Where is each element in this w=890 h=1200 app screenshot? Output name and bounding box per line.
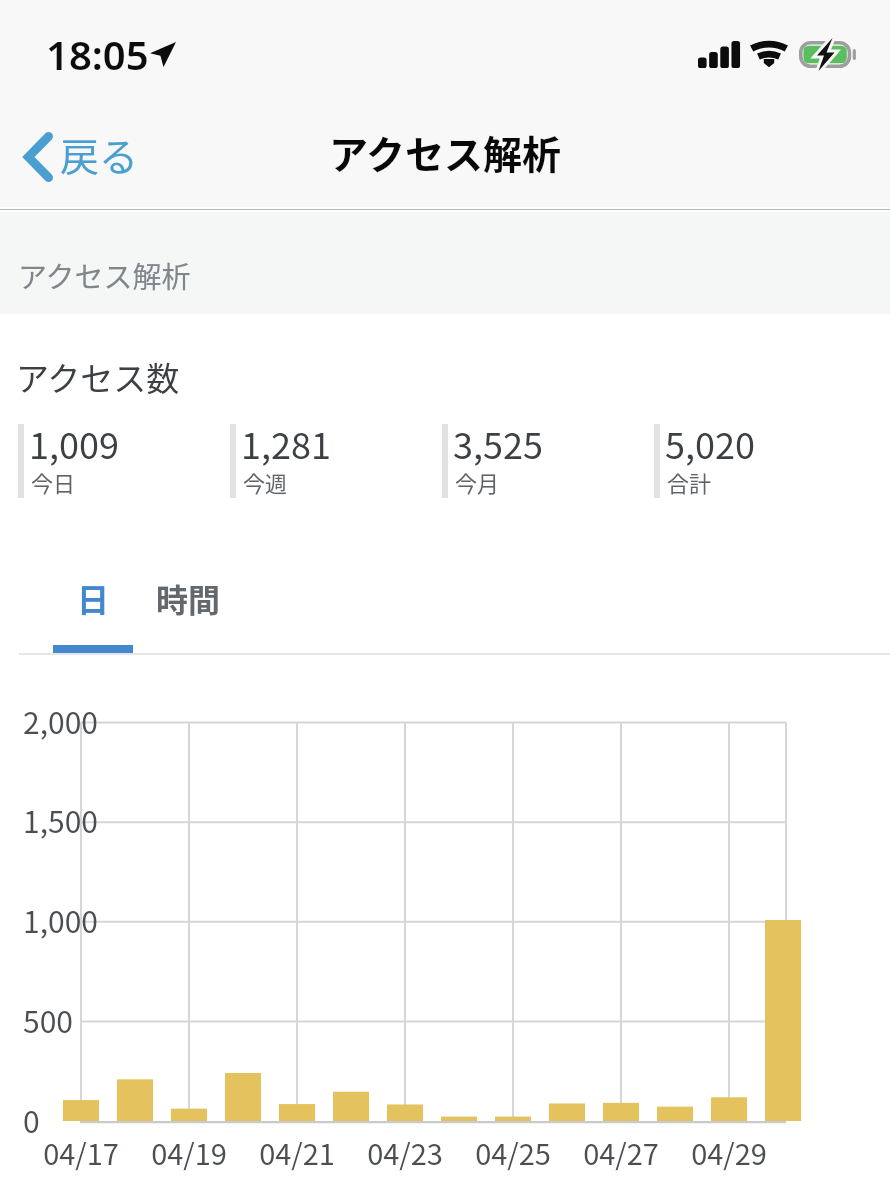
staticText: 0 bbox=[23, 1098, 40, 1141]
staticText: 今月 bbox=[455, 466, 500, 498]
staticText: 04/19 bbox=[151, 1131, 227, 1173]
staticText: 04/27 bbox=[583, 1131, 659, 1173]
staticText: 1,281 bbox=[241, 417, 331, 469]
staticText: 合計 bbox=[667, 466, 712, 498]
staticText: 1,009 bbox=[29, 417, 119, 469]
button[interactable]: 3,525 bbox=[442, 424, 654, 498]
staticText: アクセス解析 bbox=[18, 254, 191, 296]
button[interactable]: 1,009 bbox=[18, 424, 230, 498]
staticText: 500 bbox=[23, 998, 73, 1041]
staticText: 今週 bbox=[243, 466, 288, 498]
button[interactable]: 戻る bbox=[24, 129, 132, 185]
staticText: 04/25 bbox=[475, 1131, 551, 1173]
button[interactable]: 日 bbox=[53, 575, 133, 653]
staticText: 18:05 bbox=[46, 27, 149, 81]
staticText: アクセス数 bbox=[16, 353, 180, 401]
staticText: 1,000 bbox=[23, 898, 98, 941]
button[interactable]: 5,020 bbox=[654, 424, 866, 498]
staticText: 04/23 bbox=[367, 1131, 443, 1173]
button[interactable]: 1,281 bbox=[230, 424, 442, 498]
staticText: 時間 bbox=[156, 575, 221, 621]
staticText: 04/29 bbox=[691, 1131, 767, 1173]
staticText: 2,000 bbox=[23, 699, 98, 742]
staticText: 日 bbox=[77, 575, 110, 621]
staticText: 戻る bbox=[60, 126, 139, 182]
staticText: 今日 bbox=[31, 466, 76, 498]
staticText: 04/21 bbox=[259, 1131, 335, 1173]
other: 戻る bbox=[24, 132, 53, 182]
button[interactable]: 時間 bbox=[148, 575, 228, 653]
staticText: 04/17 bbox=[43, 1131, 119, 1173]
staticText: 1,500 bbox=[23, 798, 98, 841]
staticText: 5,020 bbox=[665, 417, 755, 469]
staticText: 3,525 bbox=[453, 417, 543, 469]
staticText: アクセス解析 bbox=[329, 124, 562, 180]
